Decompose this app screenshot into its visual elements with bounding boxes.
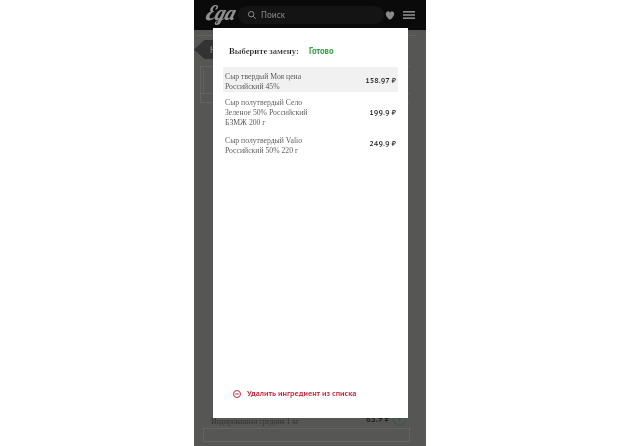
staticText: 63.9 ₽ bbox=[366, 413, 390, 424]
button[interactable]: Удалить ингредиент из списка bbox=[229, 384, 361, 403]
staticText: Н bbox=[210, 44, 217, 56]
staticText: Еда bbox=[205, 0, 234, 25]
button[interactable]: Сыр твердый Моя цена Российский 45% bbox=[223, 67, 398, 92]
staticText: Сыр твердый Моя цена Российский 45% bbox=[225, 72, 302, 90]
staticText: Удалить ингредиент из списка bbox=[247, 388, 357, 399]
staticText: Готово bbox=[309, 45, 334, 56]
button[interactable]: Eda home bbox=[196, 0, 242, 30]
button[interactable]: Готово bbox=[309, 45, 334, 56]
staticText: 249.9 ₽ bbox=[336, 138, 396, 148]
button[interactable]: Search bbox=[238, 6, 384, 24]
staticText: Сыр полутвердый Село Зеленое 50% Российс… bbox=[225, 98, 308, 126]
button[interactable]: Сыр полутвердый Село Зеленое 50% Российс… bbox=[223, 95, 398, 129]
staticText: Йодированная средняя 1 кг bbox=[211, 417, 300, 425]
staticText: Выберите замену: bbox=[229, 46, 299, 56]
staticText: Сыр полутвердый Valio Российский 50% 220… bbox=[225, 136, 303, 154]
staticText: Поиск bbox=[261, 9, 286, 21]
button[interactable]: Сыр полутвердый Valio Российский 50% 220… bbox=[223, 133, 398, 158]
button[interactable]: Favorites bbox=[380, 5, 400, 25]
staticText: 199.9 ₽ bbox=[336, 107, 396, 117]
button[interactable]: Menu bbox=[399, 5, 419, 25]
staticText: 158.97 ₽ bbox=[336, 75, 396, 85]
